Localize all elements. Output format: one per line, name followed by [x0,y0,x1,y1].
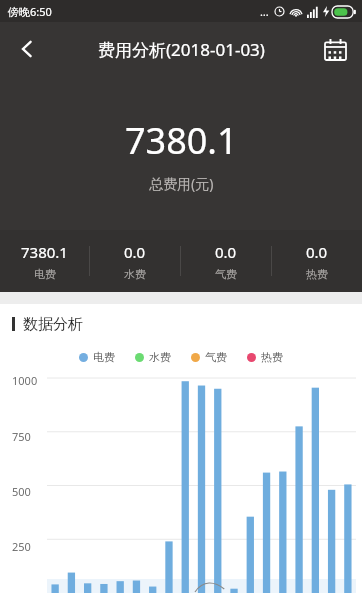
staticText: 热费 [261,350,283,364]
staticText: 水费 [149,350,171,364]
staticText: 0.0 [306,242,328,262]
button[interactable]: Back [0,22,54,76]
staticText: 总费用(元) [149,174,214,193]
staticText: 数据分析 [23,315,83,334]
staticText: 气费 [205,350,227,364]
button[interactable]: 0.0 [181,230,271,292]
staticText: 0.0 [215,242,237,262]
button[interactable]: 0.0 [272,230,362,292]
staticText: 水费 [124,267,146,281]
button[interactable]: 0.0 [90,230,180,292]
staticText: 1000 [12,373,38,388]
staticText: 500 [12,484,31,499]
staticText: 费用分析(2018-01-03) [98,38,265,61]
staticText: 7380.1 [125,116,238,165]
staticText: 750 [12,429,31,444]
staticText: 气费 [215,267,237,281]
button[interactable]: 7380.1 [0,230,89,292]
button[interactable]: 水费 [135,350,171,364]
staticText: 电费 [34,267,56,281]
button[interactable]: Select date [308,22,362,76]
staticText: 7380.1 [21,242,68,262]
staticText: 电费 [93,350,115,364]
staticText: … [260,4,269,19]
staticText: 热费 [306,267,328,281]
staticText: 0.0 [124,242,146,262]
button[interactable]: 气费 [191,350,227,364]
button[interactable]: 热费 [247,350,283,364]
staticText: 傍晚6:50 [8,4,52,19]
button[interactable]: 电费 [79,350,115,364]
staticText: 250 [12,539,31,554]
